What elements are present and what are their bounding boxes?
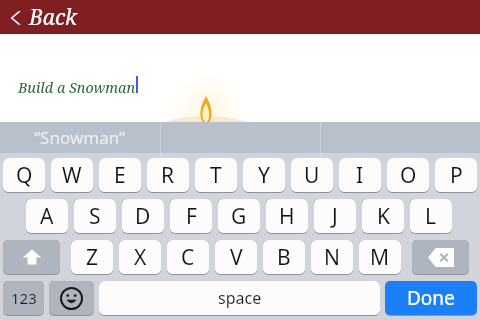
staticText: X xyxy=(134,243,147,272)
staticText: I xyxy=(356,161,364,190)
staticText: M xyxy=(370,243,390,272)
button[interactable]: space xyxy=(99,281,380,315)
staticText: “Snowman” xyxy=(34,126,126,149)
staticText: A xyxy=(40,202,54,231)
staticText: U xyxy=(304,161,320,190)
button[interactable]: “Snowman” xyxy=(0,122,160,153)
button[interactable]: Back xyxy=(8,1,80,34)
button[interactable]: Q xyxy=(3,158,45,192)
button[interactable]: V xyxy=(215,240,257,274)
staticText: T xyxy=(210,161,222,190)
staticText: E xyxy=(114,161,126,190)
button[interactable]: D xyxy=(122,199,164,233)
staticText: H xyxy=(279,202,295,231)
staticText: Done xyxy=(407,285,455,311)
staticText: K xyxy=(377,202,390,231)
staticText: Back xyxy=(29,3,78,32)
staticText: C xyxy=(181,243,195,272)
button[interactable]: S xyxy=(74,199,116,233)
staticText: D xyxy=(135,202,151,231)
button[interactable]: Emoji xyxy=(49,281,94,315)
button[interactable]: Shift xyxy=(3,240,60,274)
staticText: 123 xyxy=(11,288,37,308)
staticText: Build a Snowman xyxy=(18,78,136,97)
button[interactable]: J xyxy=(314,199,356,233)
staticText: N xyxy=(324,243,340,272)
button[interactable]: X xyxy=(119,240,161,274)
staticText: P xyxy=(450,161,463,190)
button[interactable]: O xyxy=(387,158,429,192)
button[interactable]: P xyxy=(435,158,477,192)
button[interactable]: F xyxy=(170,199,212,233)
staticText: Y xyxy=(258,161,270,190)
staticText: O xyxy=(400,161,417,190)
button[interactable]: R xyxy=(147,158,189,192)
button[interactable]: H xyxy=(266,199,308,233)
staticText: Q xyxy=(16,161,33,190)
staticText: R xyxy=(161,161,175,190)
button[interactable]: Y xyxy=(243,158,285,192)
staticText: Z xyxy=(86,243,99,272)
button[interactable]: B xyxy=(263,240,305,274)
staticText: S xyxy=(89,202,101,231)
staticText: B xyxy=(277,243,291,272)
button[interactable]: A xyxy=(26,199,68,233)
button[interactable]: T xyxy=(195,158,237,192)
staticText: W xyxy=(62,161,82,190)
button[interactable]: N xyxy=(311,240,353,274)
button[interactable]: G xyxy=(218,199,260,233)
button[interactable]: Z xyxy=(71,240,113,274)
staticText: G xyxy=(231,202,247,231)
button[interactable]: 123 xyxy=(3,281,44,315)
staticText: J xyxy=(332,202,338,231)
button[interactable]: W xyxy=(51,158,93,192)
button[interactable]: Delete xyxy=(412,240,469,274)
button[interactable]: Done xyxy=(385,281,477,315)
button[interactable]: M xyxy=(359,240,401,274)
button[interactable]: K xyxy=(362,199,404,233)
staticText: F xyxy=(186,202,197,231)
button[interactable]: C xyxy=(167,240,209,274)
staticText: L xyxy=(425,202,437,231)
button[interactable]: L xyxy=(410,199,452,233)
button[interactable]: U xyxy=(291,158,333,192)
button[interactable]: I xyxy=(339,158,381,192)
staticText: space xyxy=(218,287,262,309)
button[interactable]: E xyxy=(99,158,141,192)
staticText: V xyxy=(230,243,243,272)
